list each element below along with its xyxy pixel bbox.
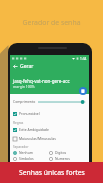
button[interactable]: Evite Ambiguidade bbox=[13, 127, 86, 132]
staticText: Pronunciável bbox=[19, 111, 40, 116]
staticText: Gerar bbox=[20, 63, 34, 70]
button[interactable]: Pronunciável bbox=[13, 111, 86, 116]
button[interactable]: Digitos bbox=[49, 150, 86, 155]
staticText: Simbolos bbox=[19, 156, 34, 161]
staticText: Nenhum bbox=[19, 150, 33, 155]
staticText: Digitos bbox=[55, 150, 67, 155]
staticText: margin 100% bbox=[13, 84, 35, 89]
staticText: Comprimento bbox=[13, 99, 36, 104]
button[interactable]: Comprimento bbox=[13, 98, 86, 105]
staticText: Senhas únicas fortes bbox=[19, 168, 85, 177]
button[interactable]: Voltar bbox=[10, 62, 89, 71]
button[interactable]: Simbolos bbox=[13, 156, 49, 161]
staticText: 1:34 bbox=[80, 57, 87, 61]
staticText: Separador bbox=[13, 145, 29, 149]
staticText: jasq-fehq-vat-non-gere-acc bbox=[13, 78, 70, 84]
button[interactable]: Copiar senha bbox=[79, 87, 87, 95]
button[interactable]: Maiusculas/Minusculas bbox=[13, 136, 86, 141]
button[interactable]: Numeros bbox=[49, 156, 86, 161]
staticText: Maiusculas/Minusculas bbox=[19, 136, 56, 141]
other: Voltar bbox=[13, 64, 18, 69]
staticText: Evite Ambiguidade bbox=[19, 127, 49, 132]
staticText: Numeros bbox=[55, 156, 70, 161]
button[interactable]: Nenhum bbox=[13, 150, 49, 155]
staticText: Regras bbox=[13, 121, 24, 125]
staticText: Gerador de senha bbox=[0, 18, 103, 27]
